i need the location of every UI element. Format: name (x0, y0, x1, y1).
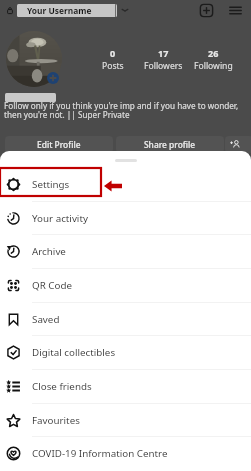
staticText: Your activity (32, 212, 88, 225)
staticText: Following (194, 60, 233, 72)
staticText: Followers (144, 60, 183, 72)
button[interactable]: Archive (0, 234, 251, 268)
button[interactable]: Share profile (116, 136, 224, 153)
staticText: Saved (32, 313, 60, 326)
staticText: Edit Profile (37, 139, 81, 150)
staticText: Settings (32, 178, 70, 191)
button[interactable]: Discover people (225, 136, 251, 153)
button[interactable]: Menu (228, 3, 243, 18)
button[interactable]: Saved (0, 302, 251, 336)
button[interactable]: 0 (83, 47, 143, 72)
button[interactable]: Your Username (17, 4, 117, 17)
staticText: QR Code (32, 279, 72, 292)
button[interactable]: 17 (133, 47, 193, 72)
staticText: 0 (110, 47, 116, 59)
button[interactable]: Your activity (0, 201, 251, 235)
staticText: Archive (32, 245, 66, 258)
button[interactable]: QR Code (0, 268, 251, 302)
staticText: 26 (208, 47, 219, 59)
button[interactable]: Favourites (0, 403, 251, 437)
staticText: Share profile (144, 139, 196, 150)
staticText: Posts (102, 60, 124, 72)
button[interactable]: New post (198, 2, 215, 19)
button[interactable]: 26 (183, 47, 243, 72)
staticText: Digital collectibles (32, 346, 116, 359)
staticText: Your Username (27, 5, 92, 16)
button[interactable]: Close friends (0, 369, 251, 403)
staticText: Follow only if you think you're imp and … (4, 100, 239, 120)
button[interactable]: COVID-19 Information Centre (0, 436, 251, 470)
button[interactable]: Add to story (47, 72, 59, 84)
other: Switch account (120, 6, 130, 14)
staticText: Favourites (32, 414, 80, 427)
staticText: 17 (158, 47, 169, 59)
staticText: Close friends (32, 380, 92, 393)
button[interactable]: Edit Profile (5, 136, 113, 153)
button[interactable]: Settings (0, 167, 251, 201)
button[interactable]: Digital collectibles (0, 335, 251, 369)
staticText: COVID-19 Information Centre (32, 447, 168, 460)
